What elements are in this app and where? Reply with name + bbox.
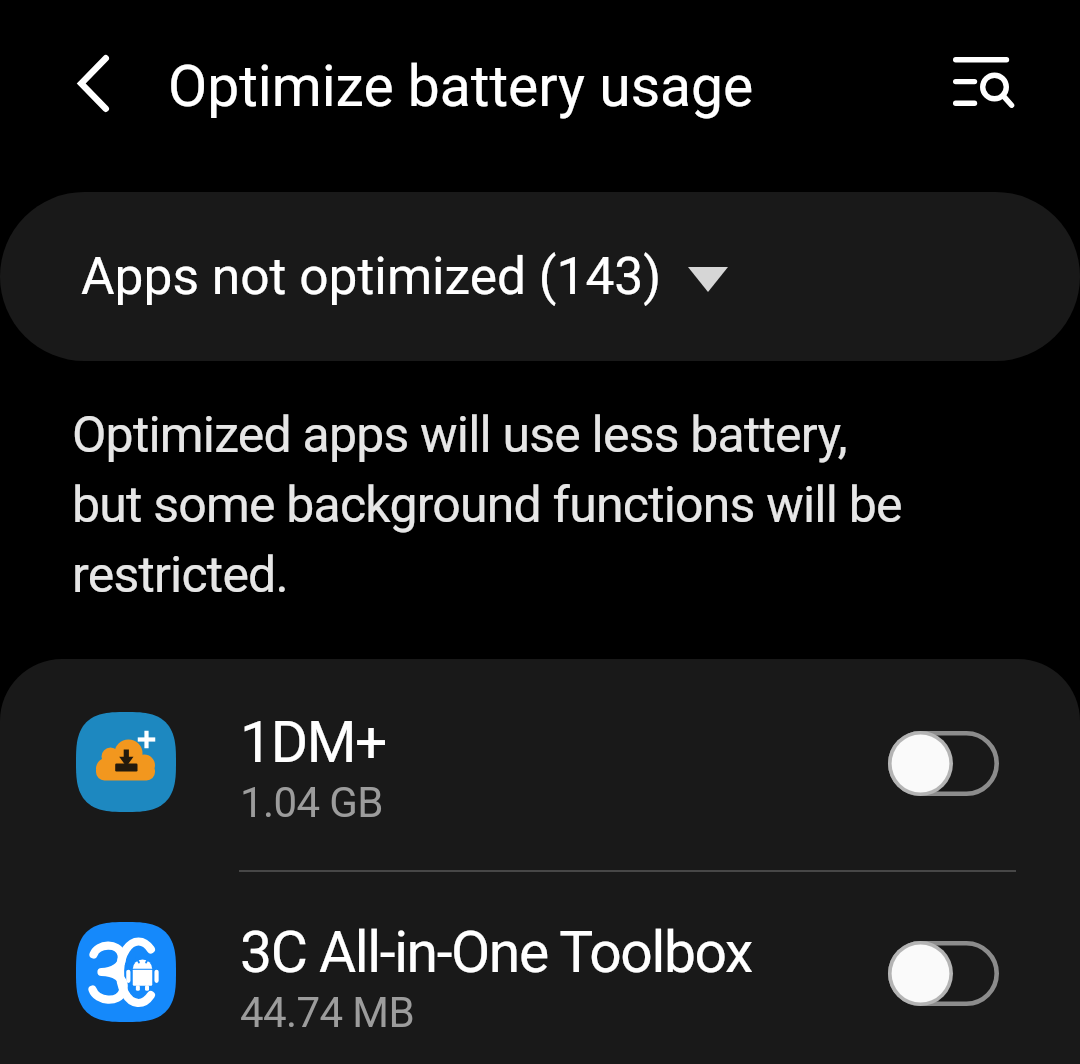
staticText: 3C All-in-One Toolbox [240, 919, 752, 986]
button[interactable]: Search [921, 29, 1047, 137]
button[interactable]: Navigate up [49, 41, 137, 125]
staticText: Optimized apps will use less battery, bu… [72, 406, 902, 605]
staticText: 1DM+ [240, 709, 386, 776]
staticText: Apps not optimized (143) [81, 246, 662, 306]
button[interactable]: Optimize toggle [888, 731, 999, 796]
button[interactable]: 3C All-in-One Toolbox [0, 869, 1080, 1062]
staticText: 1.04 GB [240, 778, 383, 827]
button[interactable]: 1DM+ [0, 659, 1080, 852]
staticText: 44.74 MB [240, 988, 414, 1037]
staticText: Optimize battery usage [168, 53, 754, 120]
button[interactable]: Apps not optimized (143) [0, 192, 1080, 361]
button[interactable]: Optimize toggle [888, 941, 999, 1006]
